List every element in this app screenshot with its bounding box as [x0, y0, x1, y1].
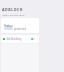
staticText: Ad blocking	[7, 37, 22, 41]
staticText: protected	[14, 27, 26, 31]
staticText: Never see ads again	[2, 13, 25, 16]
button[interactable]: Ad blocking	[1, 35, 39, 43]
staticText: Status	[4, 24, 13, 28]
staticText: ADBLOCK	[2, 7, 23, 12]
button[interactable]	[4, 27, 13, 30]
button[interactable]: Status	[1, 18, 39, 33]
